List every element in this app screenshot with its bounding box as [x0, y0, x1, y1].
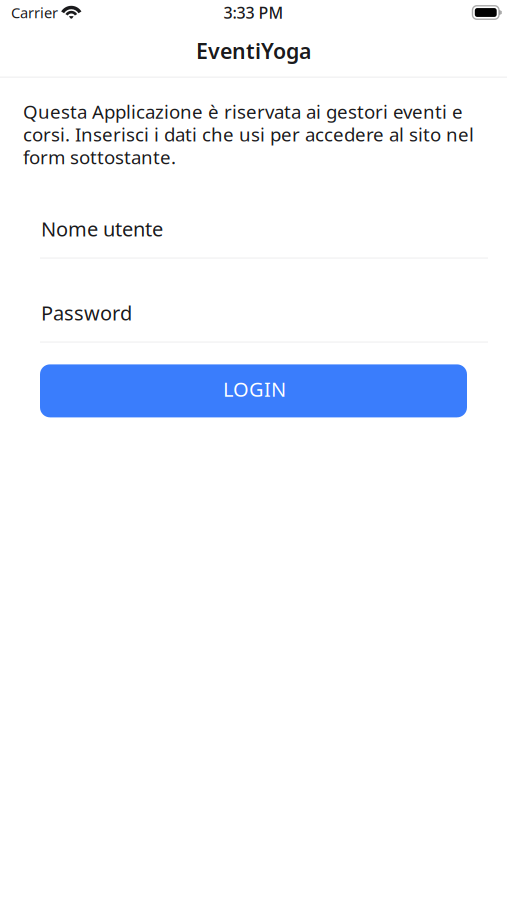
- staticText: LOGIN: [223, 376, 286, 402]
- staticText: 3:33 PM: [223, 2, 283, 23]
- button[interactable]: Nome utente: [40, 209, 488, 259]
- staticText: Carrier: [11, 3, 58, 22]
- button[interactable]: Password: [40, 293, 488, 343]
- staticText: Nome utente: [41, 215, 163, 242]
- staticText: Questa Applicazione è riservata ai gesto…: [23, 99, 474, 169]
- button[interactable]: LOGIN: [40, 364, 467, 417]
- staticText: Password: [41, 299, 132, 326]
- staticText: EventiYoga: [196, 36, 311, 65]
